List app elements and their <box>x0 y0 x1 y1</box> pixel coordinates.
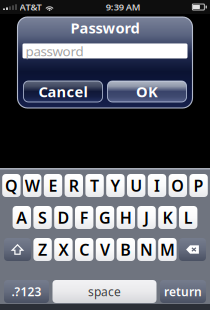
button[interactable]: V <box>96 238 114 261</box>
button[interactable]: L <box>179 206 197 229</box>
button[interactable]: J <box>137 206 156 229</box>
staticText: L <box>184 207 193 228</box>
staticText: M <box>160 239 175 260</box>
button[interactable]: G <box>96 206 114 229</box>
button[interactable]: N <box>137 238 156 261</box>
button[interactable]: Q <box>2 174 21 197</box>
staticText: R <box>69 175 79 196</box>
staticText: J <box>144 207 149 228</box>
staticText: N <box>140 239 153 260</box>
staticText: 9:39 AM <box>106 1 141 13</box>
button[interactable]: W <box>23 174 41 197</box>
staticText: F <box>80 207 89 228</box>
button[interactable]: A <box>13 206 31 229</box>
staticText: T <box>90 175 99 196</box>
button[interactable]: R <box>65 174 83 197</box>
button[interactable]: .?123 <box>4 280 49 303</box>
staticText: K <box>162 207 172 228</box>
button[interactable]: O <box>169 174 187 197</box>
button[interactable]: B <box>117 238 135 261</box>
staticText: H <box>120 207 132 228</box>
button[interactable]: X <box>54 238 73 261</box>
button[interactable]: Cancel <box>23 81 102 102</box>
staticText: Password <box>70 18 139 37</box>
staticText: D <box>57 207 69 228</box>
button[interactable]: M <box>158 238 177 261</box>
staticText: A <box>16 207 27 228</box>
button[interactable]: P <box>189 174 208 197</box>
button[interactable]: return <box>160 280 206 303</box>
staticText: O <box>171 175 184 196</box>
staticText: Z <box>38 239 47 260</box>
staticText: V <box>100 239 110 260</box>
staticText: space <box>88 283 121 299</box>
button[interactable]: Z <box>33 238 52 261</box>
button[interactable]: space <box>52 280 156 303</box>
button[interactable]: S <box>33 206 52 229</box>
button[interactable]: OK <box>107 81 186 102</box>
button[interactable]: C <box>75 238 93 261</box>
staticText: I <box>154 175 160 196</box>
staticText: E <box>48 175 57 196</box>
staticText: .?123 <box>11 283 41 299</box>
staticText: P <box>194 175 204 196</box>
staticText: B <box>120 239 131 260</box>
staticText: S <box>38 207 47 228</box>
staticText: OK <box>136 82 158 101</box>
button[interactable]: Delete <box>179 238 206 261</box>
staticText: U <box>130 175 142 196</box>
button[interactable]: K <box>158 206 177 229</box>
button[interactable]: F <box>75 206 93 229</box>
button[interactable]: D <box>54 206 73 229</box>
button[interactable]: I <box>148 174 166 197</box>
staticText: Q <box>5 175 18 196</box>
button[interactable]: T <box>85 174 104 197</box>
button[interactable]: Y <box>106 174 125 197</box>
staticText: return <box>164 283 202 299</box>
button[interactable]: U <box>127 174 145 197</box>
staticText: Y <box>110 175 120 196</box>
staticText: X <box>58 239 68 260</box>
button[interactable]: Shift <box>4 238 31 261</box>
button[interactable]: H <box>117 206 135 229</box>
staticText: AT&T <box>19 1 41 13</box>
staticText: password <box>25 42 83 60</box>
button[interactable]: E <box>44 174 62 197</box>
staticText: C <box>79 239 89 260</box>
staticText: W <box>25 175 40 196</box>
staticText: G <box>99 207 111 228</box>
staticText: Cancel <box>38 82 87 101</box>
